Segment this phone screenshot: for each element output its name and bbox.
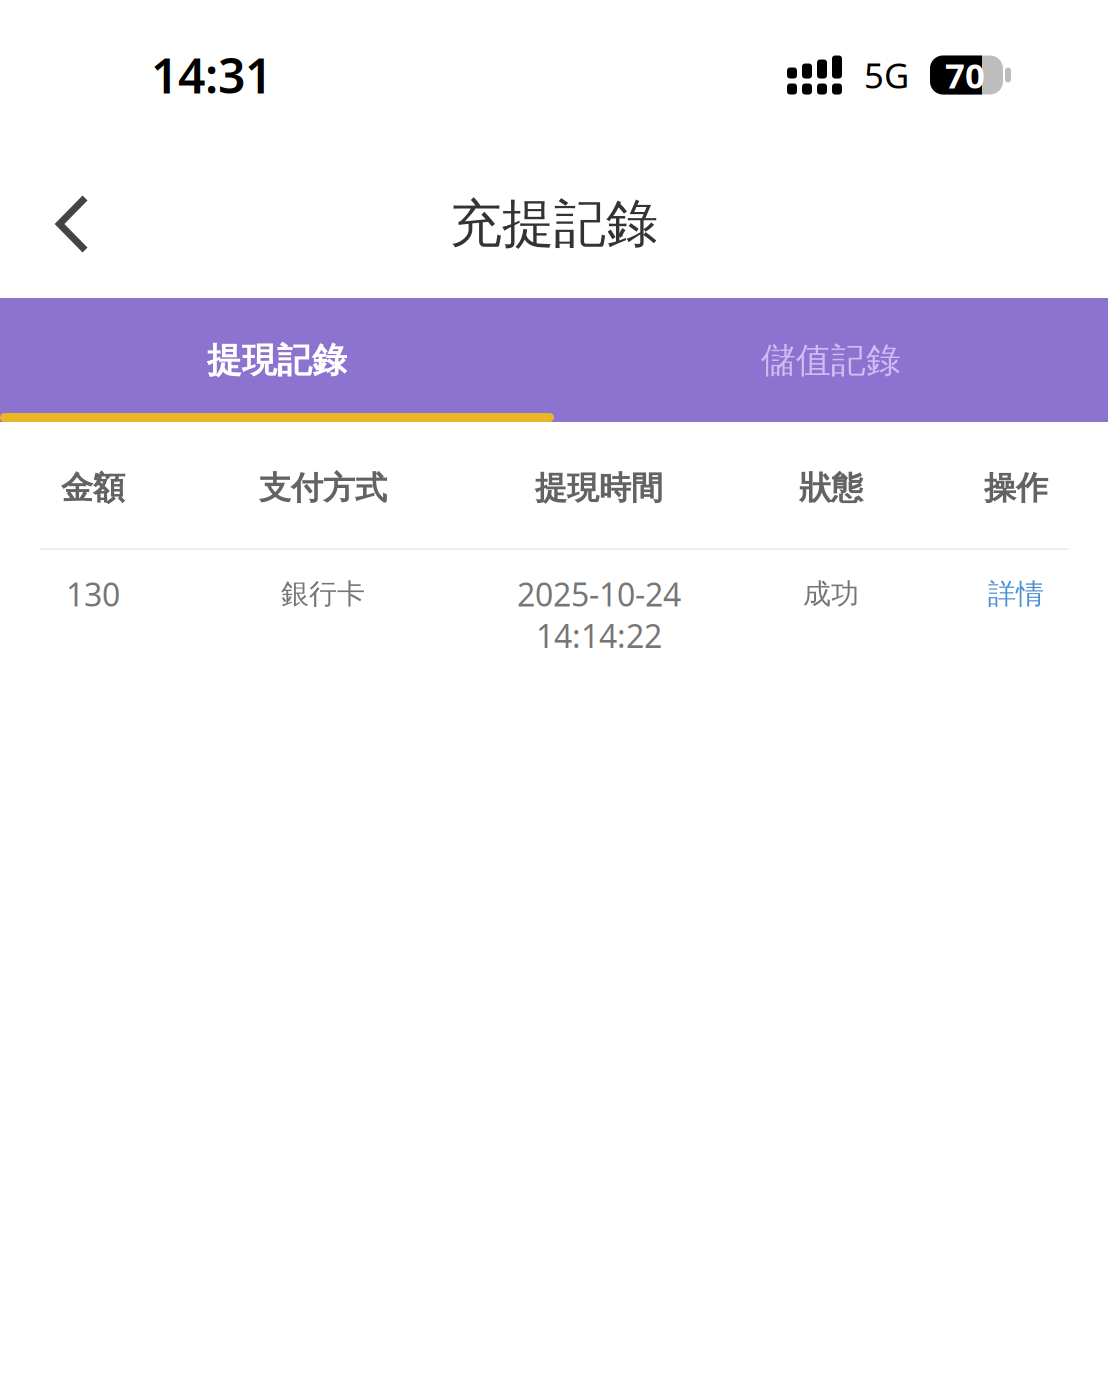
button[interactable]: 詳情 xyxy=(924,571,1108,617)
staticText: 70 xyxy=(945,52,985,98)
staticText: 金額 xyxy=(61,468,125,508)
staticText: 儲值記錄 xyxy=(761,339,901,382)
staticText: 提現記錄 xyxy=(207,339,347,382)
staticText: 提現時間 xyxy=(535,468,663,508)
button[interactable]: 提現記錄 xyxy=(0,298,554,413)
staticText: 130 xyxy=(66,573,120,615)
staticText: 2025-10-24 xyxy=(517,573,681,615)
staticText: 操作 xyxy=(984,468,1048,508)
button[interactable]: 儲值記錄 xyxy=(554,298,1108,413)
staticText: 支付方式 xyxy=(259,468,387,508)
staticText: 銀行卡 xyxy=(281,577,365,611)
staticText: 成功 xyxy=(803,577,859,611)
staticText: 14:14:22 xyxy=(536,614,662,657)
staticText: 狀態 xyxy=(799,468,863,508)
staticText: 5G xyxy=(864,52,909,98)
staticText: 詳情 xyxy=(988,577,1044,611)
staticText: 充提記錄 xyxy=(450,192,658,256)
staticText: 14:31 xyxy=(151,43,272,107)
button[interactable]: Back xyxy=(0,174,145,274)
